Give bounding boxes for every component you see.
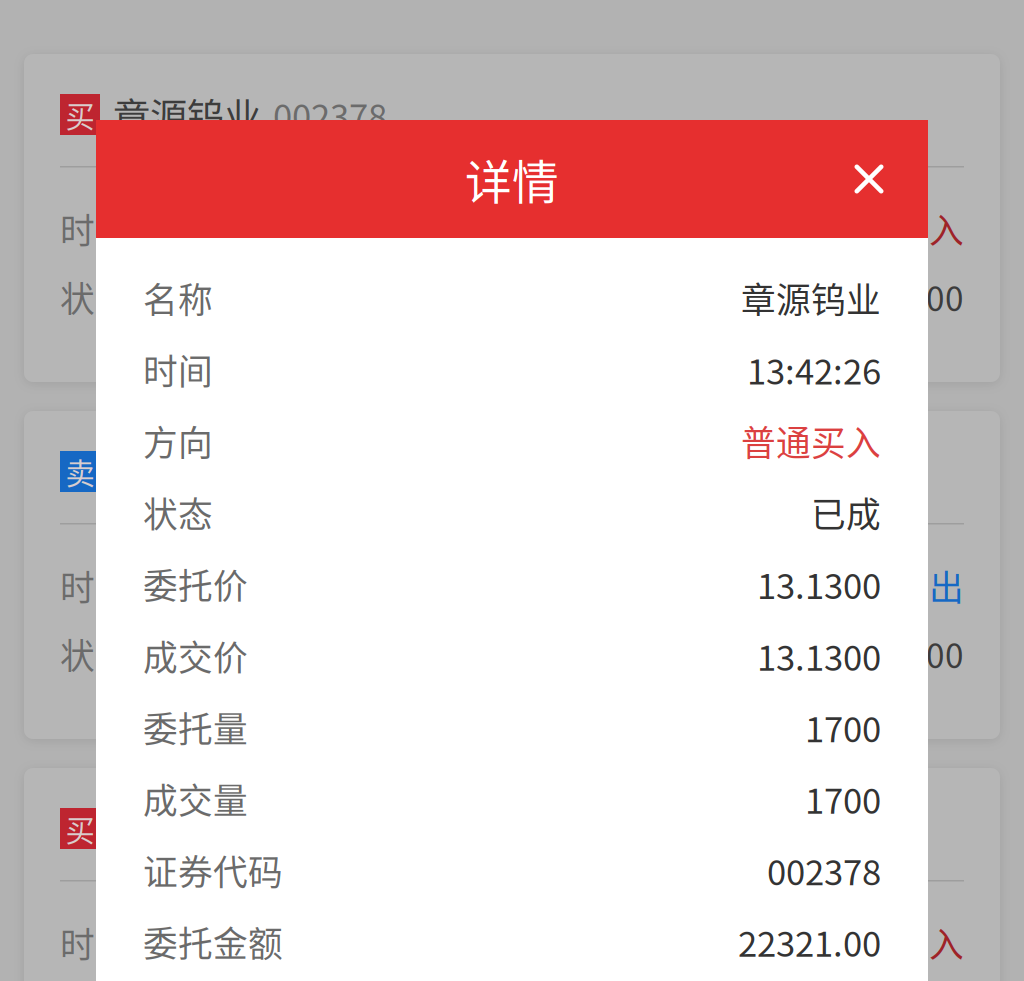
button[interactable]: 买 [24, 54, 1000, 382]
staticText: 成交量 [143, 773, 248, 824]
staticText: 22321.00 [738, 917, 881, 967]
staticText: 成交价 [143, 630, 248, 681]
staticText: 11:22:41 [670, 918, 802, 967]
staticText: 1700 [805, 773, 881, 824]
staticText: 买 [65, 807, 94, 850]
staticText: 状态 [60, 629, 130, 679]
staticText: 13:42:26 [670, 204, 802, 253]
staticText: 13:42:26 [747, 344, 881, 394]
staticText: 已成 [730, 629, 800, 679]
staticText: 已成 [730, 272, 800, 322]
staticText: 委托价 [143, 559, 248, 609]
staticText: 时间 [60, 203, 130, 254]
staticText: 22321.00 [822, 273, 964, 321]
staticText: 委托金额 [143, 917, 283, 967]
staticText: 方向 [143, 416, 213, 466]
staticText: 13.1300 [757, 559, 881, 609]
staticText: 时间 [60, 560, 130, 611]
staticText: 时间 [60, 917, 130, 968]
staticText: 晶方科技 [113, 444, 261, 499]
staticText: 普通买入 [741, 416, 881, 466]
staticText: 详情 [465, 145, 559, 213]
staticText: 普通买入 [824, 203, 964, 254]
staticText: 中科曙光 [113, 801, 261, 856]
staticText: 普通买入 [824, 917, 964, 968]
staticText: 状态 [60, 272, 130, 322]
button[interactable]: 卖 [24, 411, 1000, 739]
staticText: 章源钨业 [113, 87, 261, 142]
staticText: 13.1300 [757, 630, 881, 681]
staticText: 证券代码 [143, 845, 283, 895]
button[interactable]: 买 [24, 768, 1000, 981]
staticText: 章源钨业 [741, 273, 881, 323]
staticText: 18450.00 [822, 630, 964, 678]
staticText: 委托量 [143, 702, 248, 752]
staticText: 买 [65, 93, 94, 136]
staticText: 13:10:02 [670, 561, 802, 610]
staticText: 普通卖出 [824, 560, 964, 611]
staticText: 状态 [143, 487, 213, 537]
staticText: 1700 [805, 702, 881, 752]
staticText: 已成 [811, 487, 881, 537]
staticText: 002378 [273, 89, 387, 140]
staticText: 卖 [65, 450, 94, 493]
staticText: 名称 [143, 273, 213, 323]
staticText: 002378 [767, 845, 881, 895]
staticText: 时间 [143, 344, 213, 394]
button[interactable]: 关闭 [825, 120, 913, 238]
